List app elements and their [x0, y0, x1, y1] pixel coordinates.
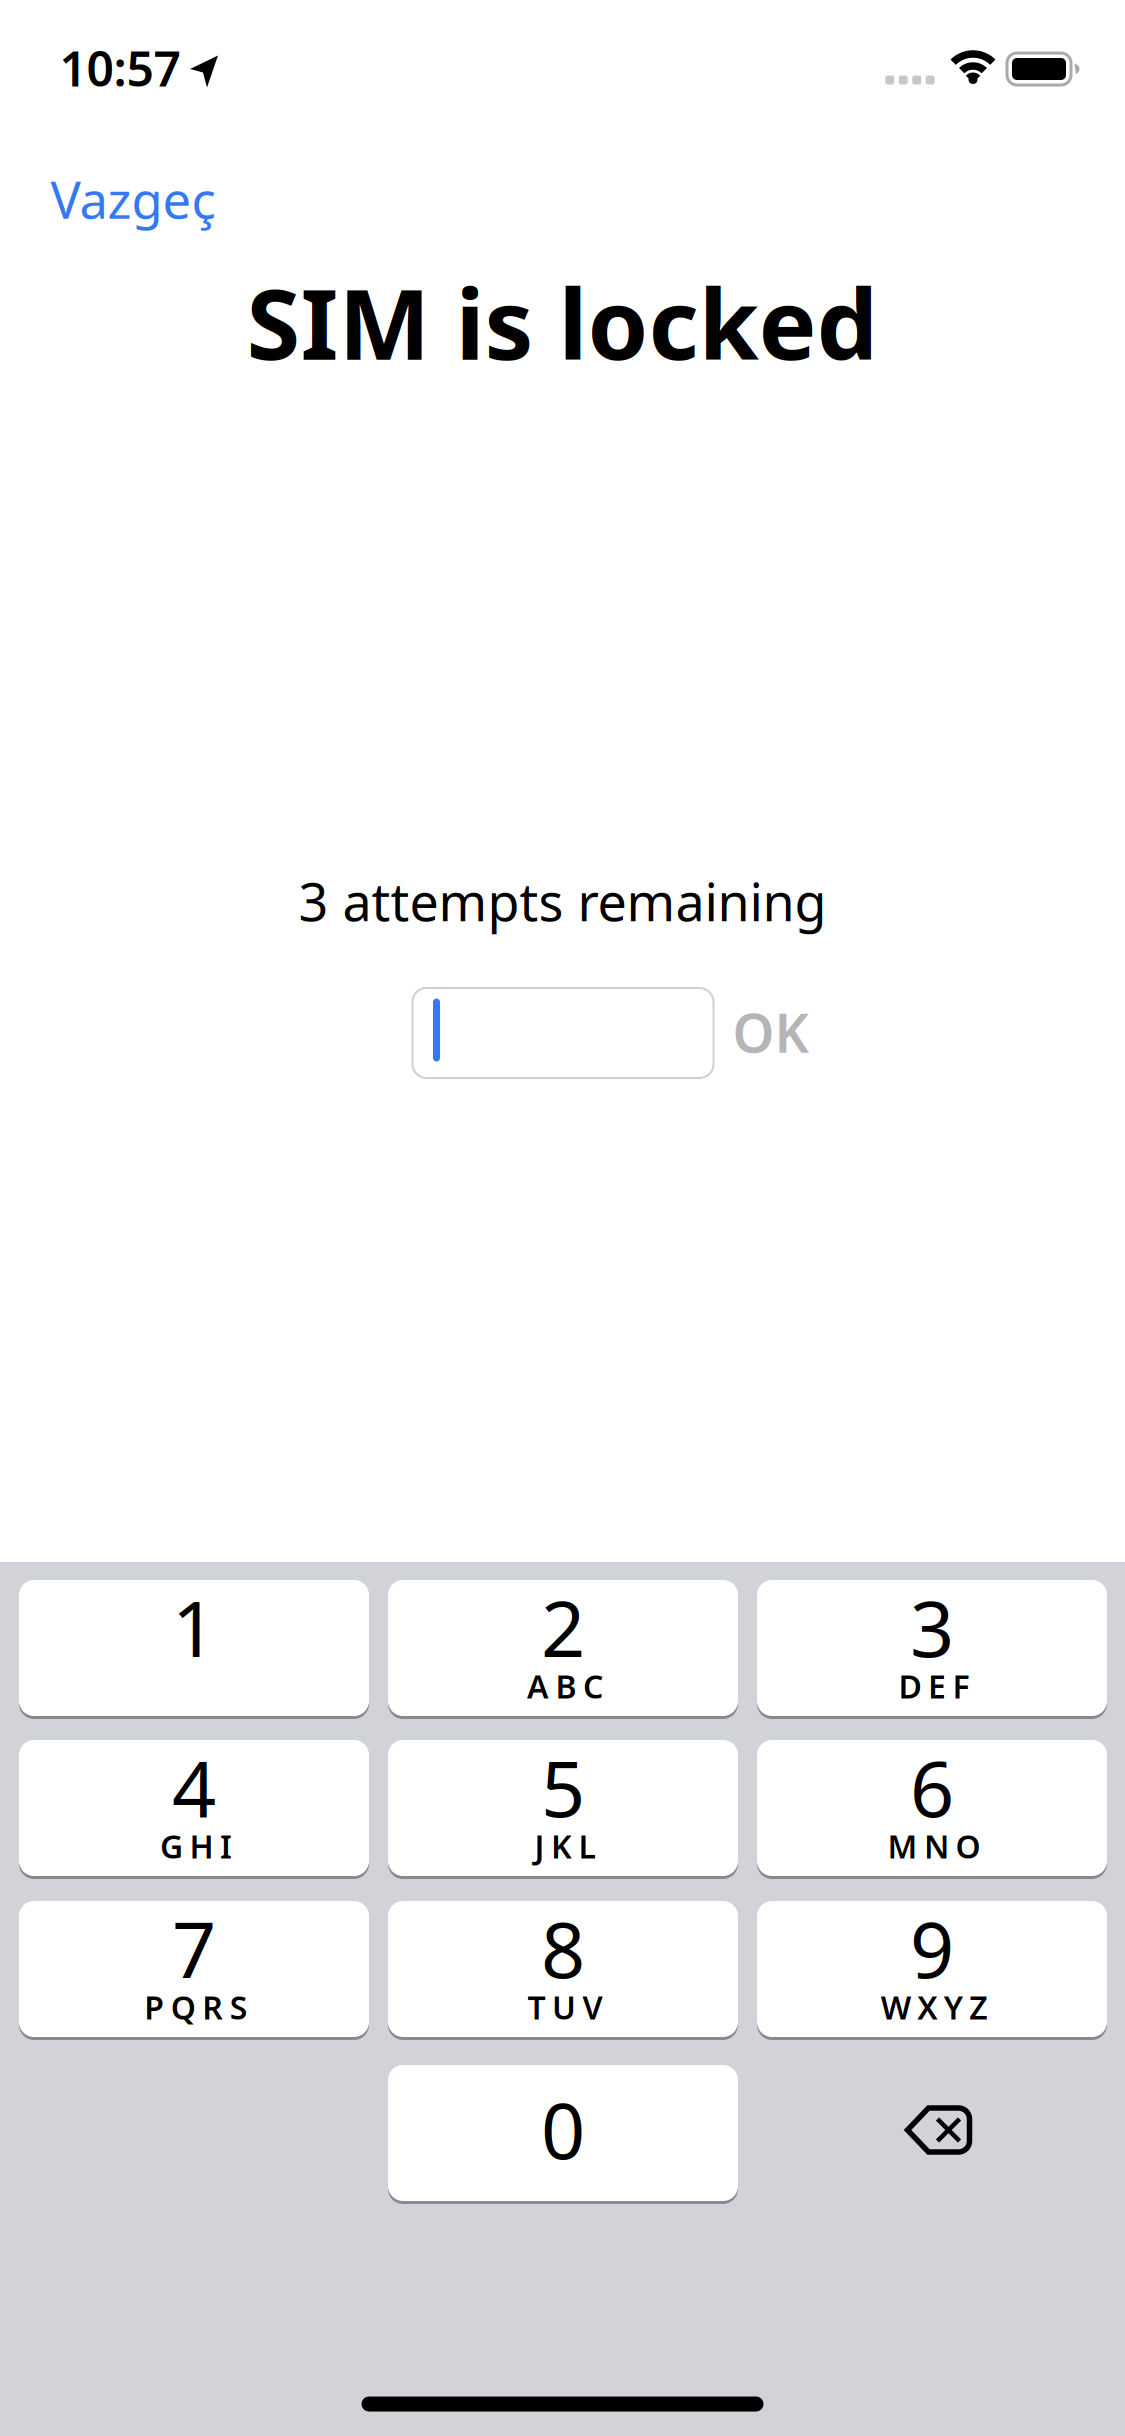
button[interactable]: 4 [19, 1740, 369, 1876]
button[interactable]: 8 [388, 1901, 738, 2037]
staticText: PQRS [144, 1986, 248, 2028]
button[interactable]: OK [732, 997, 809, 1067]
staticText: 4 [172, 1736, 216, 1838]
button[interactable]: 0 [388, 2065, 738, 2201]
button[interactable]: Delete [878, 2080, 998, 2180]
staticText: DEF [898, 1665, 969, 1707]
button[interactable]: PIN entry field [412, 988, 713, 1078]
staticText: ABC [527, 1665, 603, 1707]
staticText: SIM is locked [246, 257, 878, 387]
button[interactable]: 3 [757, 1580, 1107, 1716]
staticText: 3 [910, 1576, 954, 1678]
staticText: 10:57 [59, 36, 180, 100]
button[interactable]: 5 [388, 1740, 738, 1876]
staticText: JKL [534, 1825, 595, 1867]
staticText: TUV [527, 1986, 602, 2028]
staticText: 3 attempts remaining [298, 866, 826, 936]
staticText: 5 [541, 1736, 585, 1838]
button[interactable]: 2 [388, 1580, 738, 1716]
button[interactable]: 1 [19, 1580, 369, 1716]
staticText: GHI [160, 1825, 232, 1867]
staticText: 6 [910, 1736, 954, 1838]
button[interactable]: 6 [757, 1740, 1107, 1876]
staticText: 1 [172, 1576, 216, 1678]
staticText: WXYZ [881, 1986, 987, 2028]
staticText: 2 [541, 1576, 585, 1678]
staticText: 9 [910, 1897, 954, 1999]
staticText: Vazgeç [50, 165, 215, 233]
button[interactable]: 7 [19, 1901, 369, 2037]
staticText: 8 [541, 1897, 585, 1999]
button[interactable]: 9 [757, 1901, 1107, 2037]
staticText: MNO [887, 1825, 980, 1867]
staticText: 0 [541, 2078, 585, 2180]
staticText: 7 [172, 1897, 216, 1999]
button[interactable]: Vazgeç [50, 165, 215, 233]
staticText: OK [732, 997, 809, 1067]
